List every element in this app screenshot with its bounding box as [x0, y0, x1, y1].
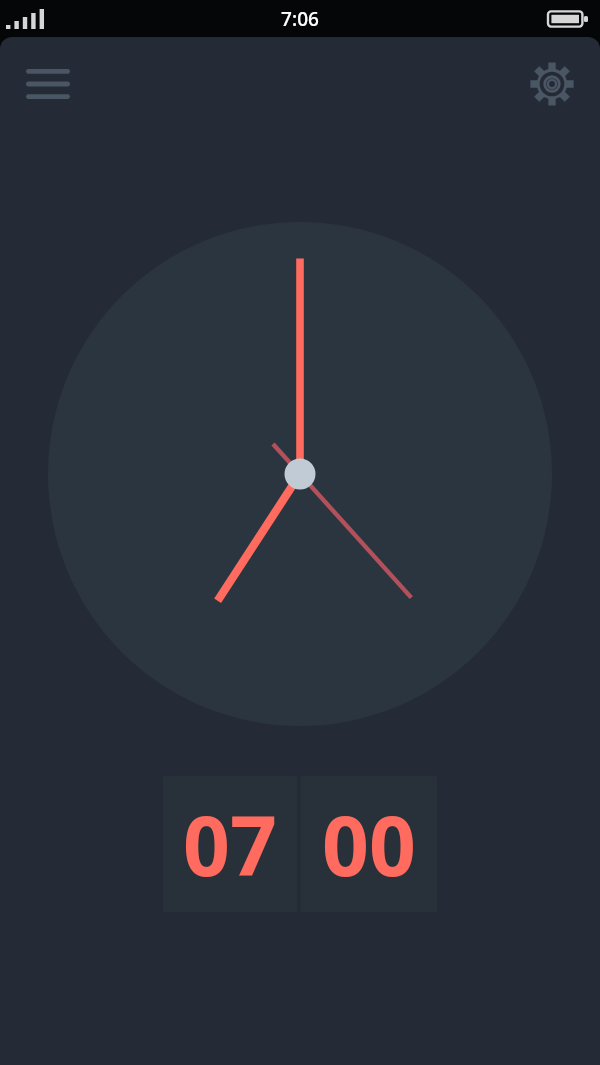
staticText: 7:06	[281, 6, 319, 32]
staticText: 00	[322, 788, 416, 900]
button[interactable]: 00	[301, 776, 437, 912]
button[interactable]: Menu	[14, 50, 82, 118]
button[interactable]: 07	[163, 776, 297, 912]
button[interactable]: Settings	[518, 50, 586, 118]
staticText: 07	[183, 788, 277, 900]
